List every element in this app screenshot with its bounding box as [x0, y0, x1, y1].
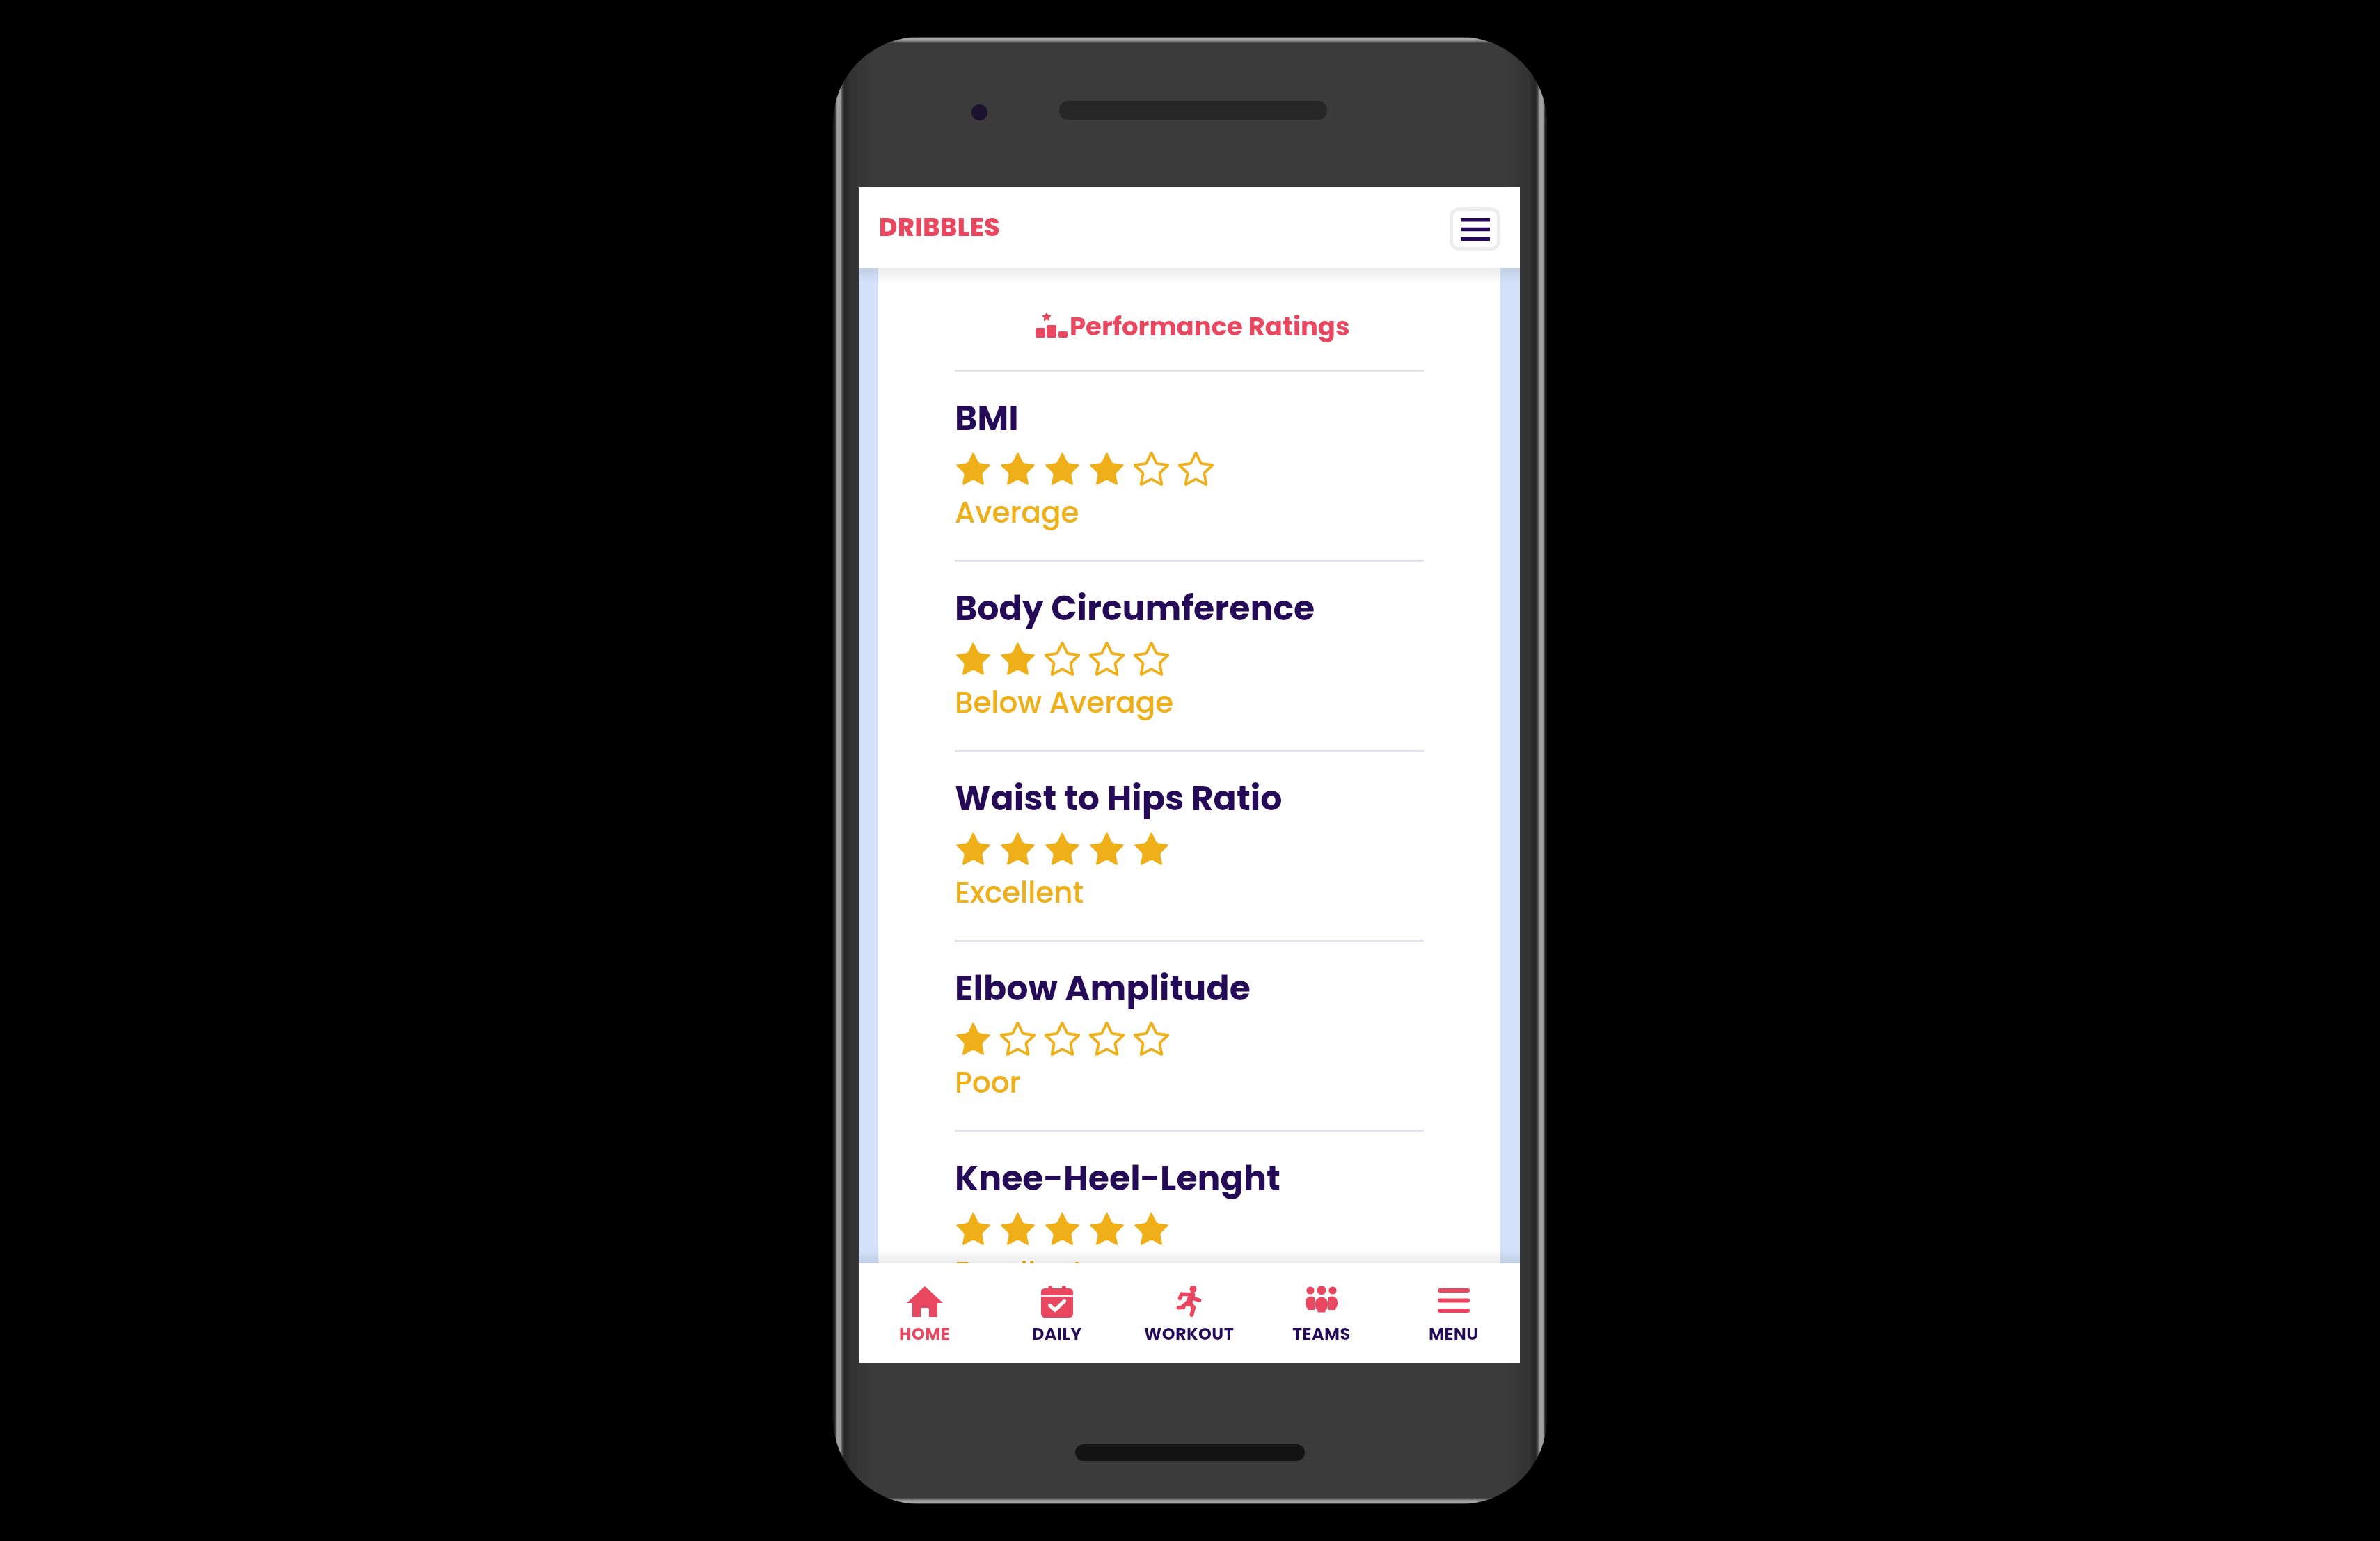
button[interactable]: Open navigation menu: [1450, 207, 1500, 251]
staticText: BMI: [955, 395, 1019, 443]
staticText: Poor: [955, 1062, 1021, 1103]
staticText: DAILY: [1032, 1322, 1082, 1346]
button[interactable]: Elbow Amplitude: [878, 942, 1500, 1130]
staticText: TEAMS: [1292, 1322, 1351, 1346]
button[interactable]: DAILY: [991, 1263, 1123, 1363]
button[interactable]: Waist to Hips Ratio: [878, 752, 1500, 940]
button[interactable]: TEAMS: [1255, 1263, 1388, 1363]
button[interactable]: BMI: [878, 372, 1500, 560]
staticText: Knee-Heel-Lenght: [955, 1155, 1280, 1203]
staticText: DRIBBLES: [879, 210, 1001, 244]
button[interactable]: MENU: [1388, 1263, 1520, 1363]
staticText: Performance Ratings: [1070, 308, 1350, 345]
button[interactable]: Knee-Heel-Lenght: [878, 1132, 1500, 1263]
staticText: Average: [955, 492, 1079, 533]
staticText: Waist to Hips Ratio: [955, 775, 1283, 823]
staticText: Below Average: [955, 682, 1174, 723]
staticText: Body Circumference: [955, 585, 1315, 633]
button[interactable]: Body Circumference: [878, 562, 1500, 750]
staticText: Excellent: [955, 1252, 1084, 1293]
staticText: MENU: [1429, 1322, 1479, 1346]
staticText: WORKOUT: [1144, 1322, 1235, 1346]
staticText: HOME: [899, 1322, 951, 1346]
staticText: Elbow Amplitude: [955, 965, 1251, 1013]
button[interactable]: WORKOUT: [1123, 1263, 1255, 1363]
staticText: Excellent: [955, 872, 1084, 913]
button[interactable]: HOME: [859, 1263, 991, 1363]
